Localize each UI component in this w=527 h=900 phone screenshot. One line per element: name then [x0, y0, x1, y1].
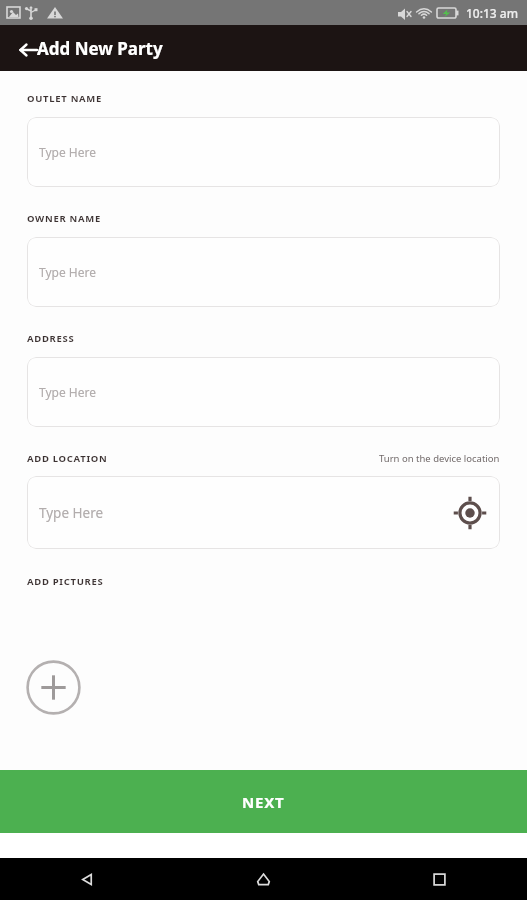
button[interactable]: Back [20, 37, 163, 60]
button[interactable]: Type Here [27, 117, 500, 187]
staticText: Type Here [39, 144, 96, 160]
button[interactable]: Type Here [27, 237, 500, 307]
staticText: OUTLET NAME [27, 92, 103, 105]
button[interactable]: NEXT [0, 770, 527, 833]
button[interactable]: Type Here [27, 357, 500, 427]
staticText: Type Here [39, 504, 104, 522]
button[interactable]: Turn on the device location [379, 452, 500, 465]
staticText: OWNER NAME [27, 212, 101, 225]
staticText: ADD LOCATION [27, 452, 108, 465]
button[interactable]: Type Here [27, 476, 500, 549]
staticText: Type Here [39, 264, 96, 280]
staticText: Add New Party [37, 37, 163, 60]
staticText: ADDRESS [27, 332, 75, 345]
button[interactable]: Use my location [453, 496, 487, 530]
staticText: ADD PICTURES [27, 575, 104, 588]
button[interactable]: Recent apps [351, 858, 527, 900]
button[interactable]: Home [175, 858, 351, 900]
staticText: 10:13 am [466, 5, 519, 21]
staticText: NEXT [242, 792, 285, 812]
button[interactable]: Back [0, 858, 175, 900]
staticText: Type Here [39, 384, 96, 400]
button[interactable]: Add picture [26, 660, 81, 715]
